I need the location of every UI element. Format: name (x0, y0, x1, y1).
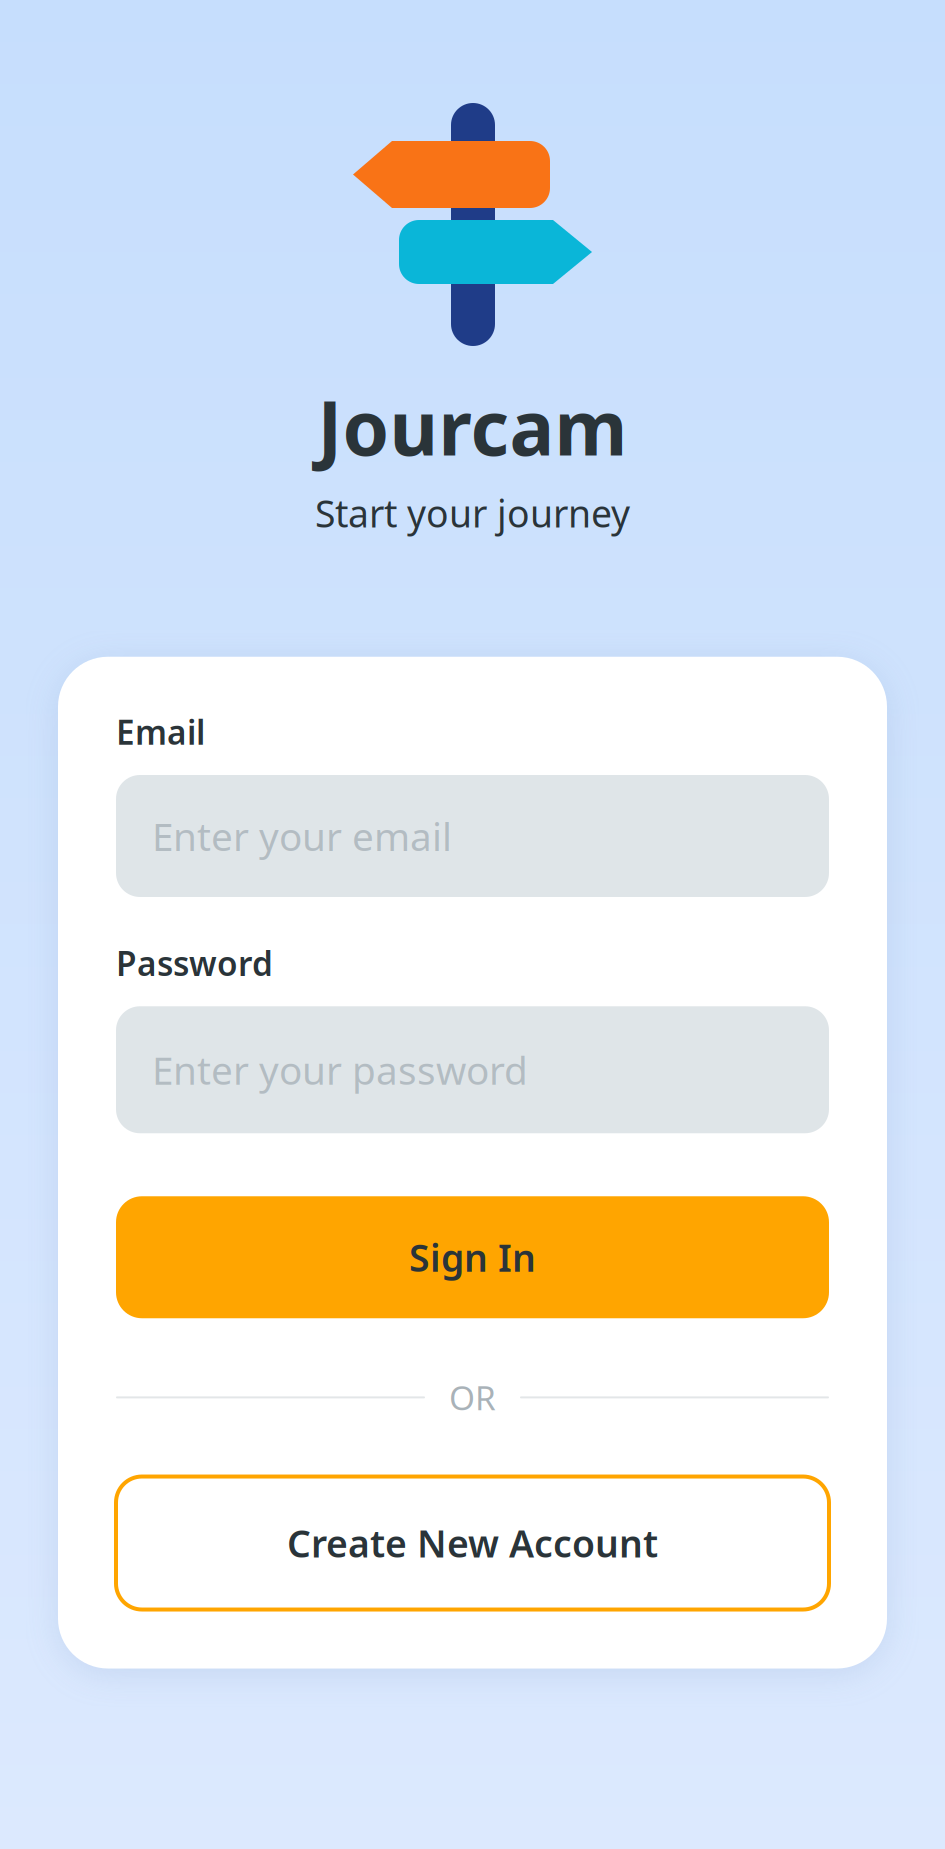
button[interactable]: Enter your password (116, 1006, 829, 1133)
button[interactable]: Create New Account (116, 1476, 829, 1609)
button[interactable]: Enter your email (116, 775, 829, 897)
staticText: Enter your email (152, 810, 452, 862)
staticText: Create New Account (287, 1518, 658, 1568)
staticText: OR (449, 1375, 496, 1420)
staticText: Start your journey (315, 488, 630, 538)
staticText: Sign In (409, 1232, 536, 1282)
staticText: Jourcam (317, 377, 627, 476)
staticText: Password (116, 941, 273, 985)
button[interactable]: Sign In (116, 1196, 829, 1318)
staticText: Email (116, 710, 205, 754)
staticText: Enter your password (152, 1044, 528, 1095)
